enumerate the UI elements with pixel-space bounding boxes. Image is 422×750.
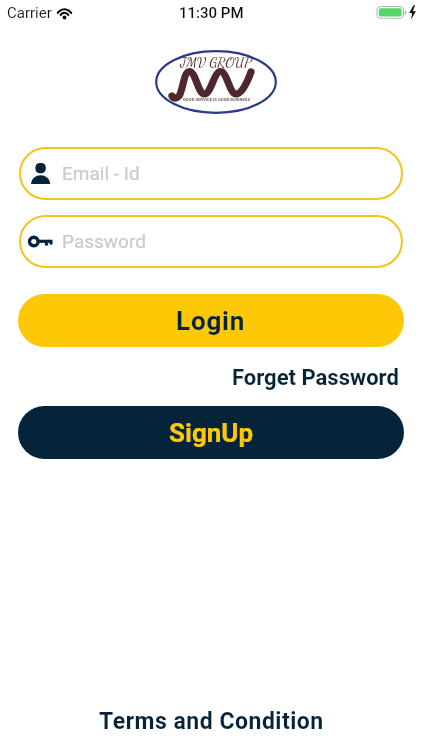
staticText: JMV GROUP	[180, 55, 252, 71]
staticText: 11:30 PM	[179, 4, 244, 22]
staticText: Terms and Condition	[99, 708, 324, 735]
staticText: Email - Id	[62, 162, 140, 184]
staticText: Forget Password	[232, 365, 399, 391]
staticText: Carrier	[7, 4, 52, 22]
staticText: Login	[176, 306, 246, 336]
staticText: Password	[62, 230, 146, 252]
staticText: SignUp	[169, 418, 254, 448]
staticText: GOOD SERVICE IS GOOD BUSINESS	[183, 97, 250, 102]
